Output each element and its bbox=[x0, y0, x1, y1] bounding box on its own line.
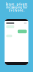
staticText: messaging for bbox=[6, 6, 27, 9]
staticText: everyone. bbox=[8, 9, 24, 12]
staticText: Secure, private bbox=[5, 3, 27, 6]
